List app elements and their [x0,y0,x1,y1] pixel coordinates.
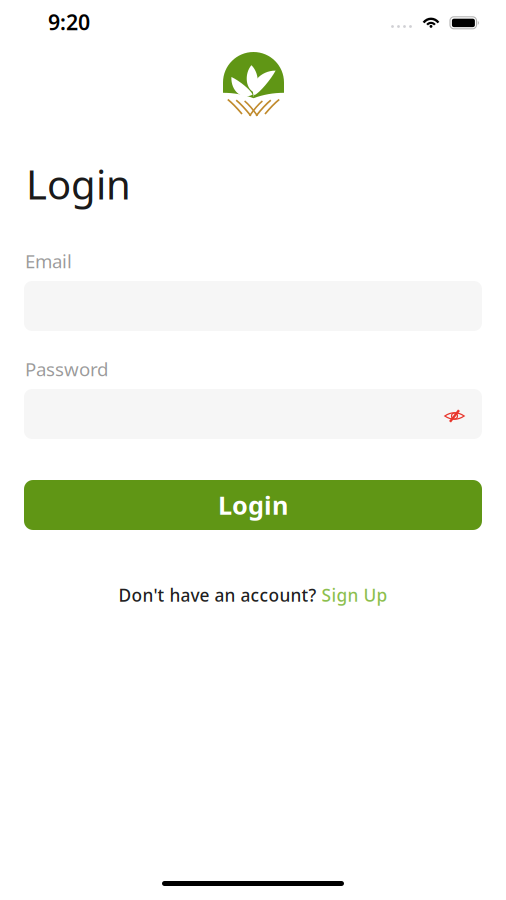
staticText: Login [26,157,131,210]
staticText: Login [218,488,288,522]
staticText: Sign Up [321,583,387,606]
staticText: Don't have an account? [118,583,321,606]
button[interactable]: Login [24,480,482,530]
staticText: Email [25,249,72,273]
staticText: Password [25,357,108,381]
button[interactable]: Sign Up [321,583,387,606]
staticText: 9:20 [48,8,90,36]
button[interactable]: Show password [430,389,482,439]
